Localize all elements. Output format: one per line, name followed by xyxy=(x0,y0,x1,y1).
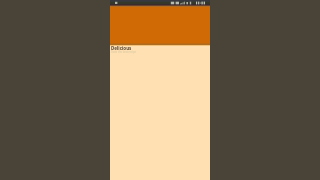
staticText: Taste the best recipe xyxy=(111,50,137,54)
staticText: Delicious xyxy=(111,45,132,51)
button[interactable]: Header image xyxy=(110,7,210,45)
button[interactable]: Delicious xyxy=(110,45,210,55)
